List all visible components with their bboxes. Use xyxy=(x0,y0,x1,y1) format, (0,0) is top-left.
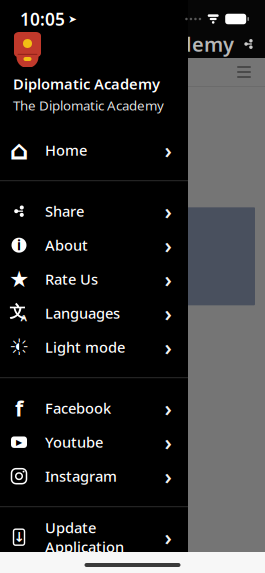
staticText: Instagram xyxy=(45,466,117,486)
staticText: › xyxy=(164,462,171,490)
staticText: › xyxy=(164,231,171,259)
button[interactable]: Share xyxy=(0,194,188,228)
button[interactable]: ★ xyxy=(0,262,188,296)
staticText: Rate Us xyxy=(45,269,98,289)
staticText: › xyxy=(164,265,171,293)
staticText: 10:05 xyxy=(20,7,65,30)
staticText: The Diplomatic Academy xyxy=(13,96,164,114)
button[interactable]: ⌂ xyxy=(0,133,188,167)
button[interactable]: ☀ xyxy=(0,330,188,364)
staticText: Youtube xyxy=(45,432,103,452)
button[interactable]: ▶ xyxy=(0,425,188,459)
staticText: ⌂ xyxy=(9,135,28,165)
staticText: ned) xyxy=(6,167,57,197)
staticText: › xyxy=(164,197,171,225)
button[interactable]: i xyxy=(0,228,188,262)
staticText: f xyxy=(15,394,23,422)
staticText: ↓ xyxy=(13,530,24,545)
staticText: Diplomatic Academy xyxy=(13,74,160,93)
staticText: › xyxy=(164,333,171,361)
staticText: › xyxy=(164,299,171,327)
staticText: Facebook xyxy=(45,398,111,418)
button[interactable]: Instagram xyxy=(0,459,188,493)
staticText: Home xyxy=(45,140,87,160)
staticText: Share xyxy=(45,201,84,221)
staticText: es are essential in xyxy=(6,339,107,355)
staticText: Languages xyxy=(45,303,120,323)
staticText: 文 xyxy=(9,302,25,322)
staticText: › xyxy=(164,428,171,456)
staticText: nternational and xyxy=(6,317,98,333)
staticText: Light mode xyxy=(45,337,125,357)
staticText: omatic xyxy=(6,101,85,131)
staticText: › xyxy=(164,394,171,422)
staticText: i xyxy=(17,236,21,254)
button[interactable]: 文 xyxy=(0,296,188,330)
staticText: etiquette xyxy=(6,496,56,512)
staticText: ▶ xyxy=(16,438,22,447)
staticText: an of the xyxy=(6,519,55,535)
staticText: About xyxy=(45,235,88,255)
button[interactable]: ↓ xyxy=(0,520,188,554)
staticText: ★ xyxy=(9,266,29,292)
staticText: demy xyxy=(179,31,234,57)
staticText: program xyxy=(6,134,104,164)
staticText: › xyxy=(164,136,171,164)
staticText: ➤ xyxy=(68,13,77,25)
staticText: › xyxy=(164,523,171,551)
staticText: ☀ xyxy=(9,334,29,360)
button[interactable]: f xyxy=(0,391,188,425)
staticText: Update Application xyxy=(45,518,124,557)
staticText: A xyxy=(20,311,26,324)
